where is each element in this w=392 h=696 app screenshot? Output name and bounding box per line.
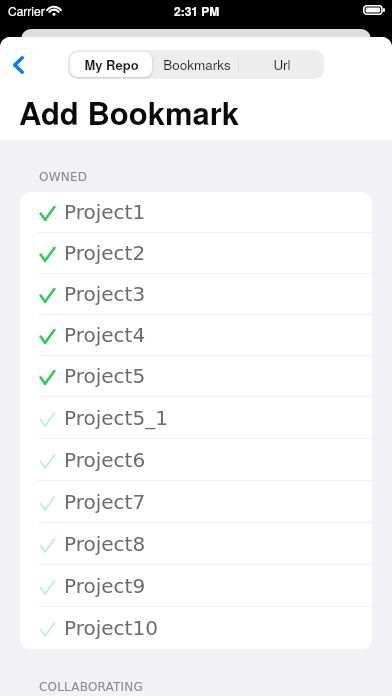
button[interactable]: Project10: [20, 607, 372, 649]
staticText: Project2: [64, 241, 146, 264]
staticText: Carrier: [8, 2, 45, 19]
button[interactable]: Project1: [20, 192, 372, 233]
staticText: Bookmarks: [163, 55, 231, 74]
button[interactable]: Back: [0, 50, 38, 79]
staticText: Project3: [64, 282, 146, 305]
button[interactable]: Project3: [20, 274, 372, 315]
staticText: Project4: [64, 323, 146, 346]
button[interactable]: Project4: [20, 315, 372, 356]
staticText: 2:31 PM: [174, 2, 220, 19]
button[interactable]: Project5: [20, 356, 372, 397]
staticText: Project5_1: [64, 406, 168, 429]
staticText: Url: [273, 55, 291, 74]
staticText: My Repo: [84, 55, 139, 74]
button[interactable]: Project7: [20, 481, 372, 523]
staticText: Project1: [64, 200, 146, 223]
button[interactable]: My Repo: [70, 52, 152, 77]
staticText: COLLABORATING: [39, 680, 144, 694]
button[interactable]: Project8: [20, 523, 372, 565]
button[interactable]: Bookmarks: [156, 52, 237, 77]
button[interactable]: Project2: [20, 233, 372, 274]
staticText: Project10: [64, 616, 158, 639]
button[interactable]: Project6: [20, 439, 372, 481]
button[interactable]: Project5_1: [20, 397, 372, 439]
staticText: Add Bookmark: [19, 90, 240, 134]
staticText: Project6: [64, 448, 146, 471]
staticText: Project7: [64, 490, 146, 513]
button[interactable]: Project9: [20, 565, 372, 607]
staticText: Project9: [64, 574, 146, 597]
staticText: Project8: [64, 532, 146, 555]
button[interactable]: Url: [241, 52, 322, 77]
staticText: OWNED: [39, 170, 88, 184]
staticText: Project5: [64, 364, 146, 387]
